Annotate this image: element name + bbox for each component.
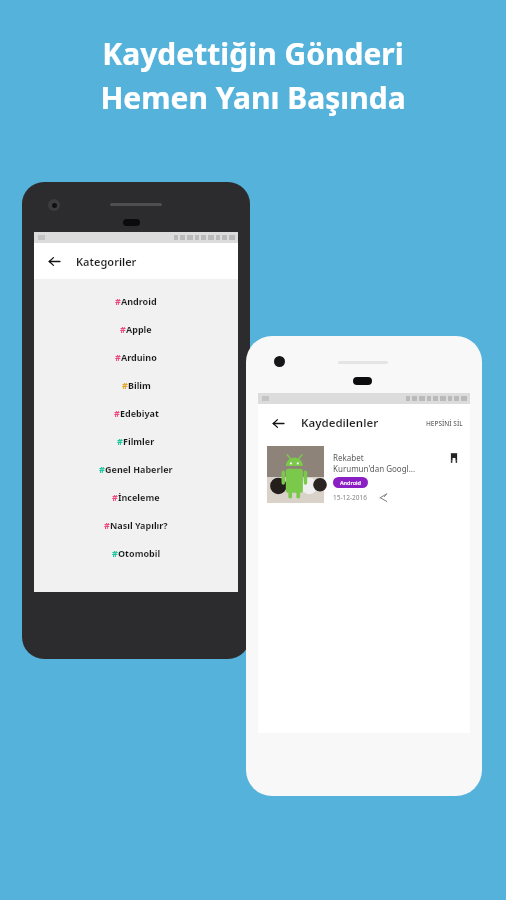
staticText: # [112, 491, 118, 503]
staticText: Kurumun'dan Googl... [333, 463, 416, 474]
button[interactable]: # [34, 343, 238, 371]
staticText: # [112, 547, 118, 559]
staticText: Edebiyat [120, 407, 159, 419]
button[interactable]: Bookmark [448, 452, 460, 464]
staticText: Otomobil [118, 547, 161, 559]
button[interactable]: Share [378, 492, 389, 503]
staticText: Kategoriler [76, 254, 137, 269]
staticText: HEPSİNİ SİL [426, 419, 463, 428]
button[interactable]: Android [340, 479, 361, 486]
staticText: Genel Haberler [105, 463, 173, 475]
staticText: # [115, 295, 121, 307]
staticText: Apple [126, 323, 152, 335]
staticText: # [115, 351, 121, 363]
button[interactable]: # [34, 427, 238, 455]
staticText: # [104, 519, 110, 531]
staticText: Bilim [128, 379, 151, 391]
staticText: # [114, 407, 120, 419]
button[interactable]: # [34, 511, 238, 539]
button[interactable]: # [34, 287, 238, 315]
button[interactable]: Back [44, 251, 64, 271]
staticText: Kaydedilenler [301, 415, 379, 431]
staticText: # [120, 323, 126, 335]
staticText: Rekabet [333, 452, 364, 463]
staticText: Android [121, 295, 157, 307]
button[interactable]: Back [34, 243, 238, 279]
button[interactable]: # [34, 315, 238, 343]
staticText: # [122, 379, 128, 391]
staticText: Arduino [121, 351, 157, 363]
staticText: Filmler [123, 435, 155, 447]
staticText: Android [340, 479, 361, 486]
button[interactable]: HEPSİNİ SİL [419, 413, 470, 434]
staticText: # [99, 463, 105, 475]
staticText: Hemen Yanı Başında [100, 77, 406, 118]
button[interactable]: Back [258, 404, 470, 442]
staticText: Kaydettiğin Gönderi [102, 33, 404, 74]
staticText: İnceleme [118, 491, 160, 503]
button[interactable]: # [34, 399, 238, 427]
button[interactable]: # [34, 539, 238, 567]
button[interactable]: # [34, 483, 238, 511]
button[interactable]: Rekabet [267, 446, 462, 503]
staticText: # [117, 435, 123, 447]
staticText: 15-12-2016 [333, 493, 367, 502]
button[interactable]: # [34, 371, 238, 399]
button[interactable]: Back [268, 413, 288, 433]
button[interactable]: # [34, 455, 238, 483]
staticText: Nasıl Yapılır? [110, 519, 168, 531]
